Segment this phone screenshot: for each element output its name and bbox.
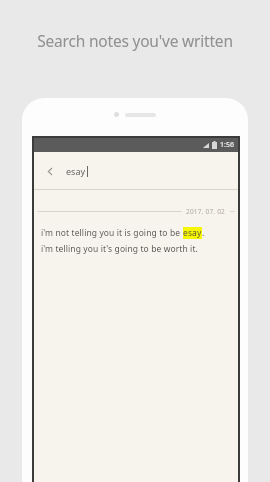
button[interactable]: Back (34, 152, 238, 189)
button[interactable]: i'm not telling you it is going to be (34, 227, 238, 255)
staticText: i'm telling you it's going to be worth i… (41, 243, 198, 255)
staticText: . (202, 227, 205, 239)
staticText: esay (183, 227, 202, 239)
button[interactable]: Back (40, 161, 60, 181)
staticText: Search notes you've written (0, 30, 270, 51)
staticText: esay (66, 165, 86, 177)
staticText: 1:56 (220, 140, 234, 150)
staticText: i'm not telling you it is going to be (41, 227, 183, 239)
staticText: 2017. 07. 02 (186, 207, 226, 216)
